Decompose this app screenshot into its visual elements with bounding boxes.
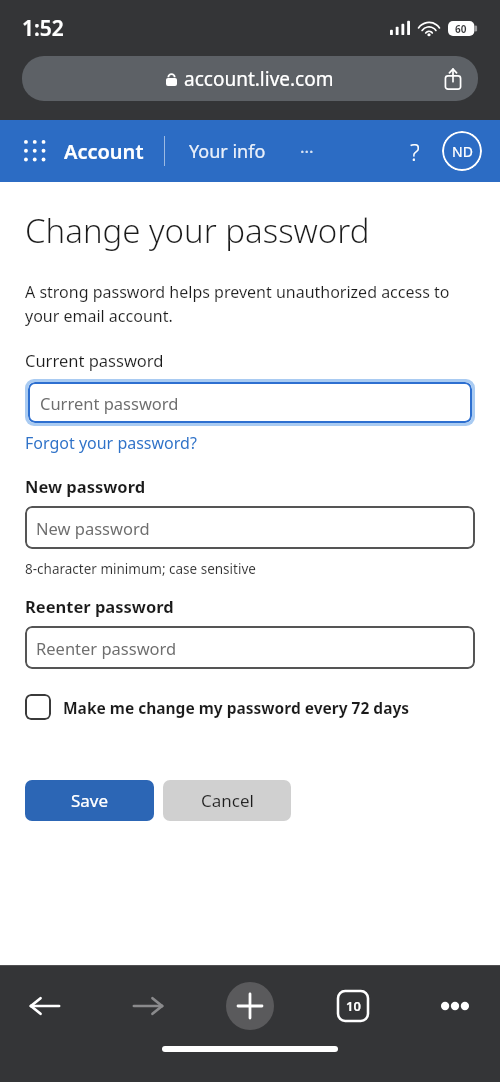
staticText: Save [71, 789, 109, 812]
staticText: Reenter password [25, 595, 174, 617]
staticText: New password [25, 475, 146, 497]
staticText: Account [64, 138, 144, 165]
button[interactable]: Account [60, 132, 148, 171]
button[interactable]: Save [25, 780, 154, 821]
button[interactable]: Your info [185, 133, 270, 170]
button[interactable]: Forgot your password? [25, 432, 197, 454]
staticText: ··· [300, 140, 314, 163]
button[interactable]: Tabs: 10 [322, 975, 384, 1037]
button[interactable]: Account ND [442, 131, 482, 171]
button[interactable]: Make me change my password every 72 days [25, 694, 475, 720]
staticText: New password [36, 517, 150, 539]
staticText: ? [410, 136, 420, 167]
button[interactable]: Forward [117, 975, 179, 1037]
staticText: Cancel [201, 789, 254, 812]
button[interactable]: Share [440, 66, 466, 92]
staticText: 60 [455, 22, 467, 36]
button[interactable]: More options [424, 975, 486, 1037]
staticText: 8-character minimum; case sensitive [25, 560, 256, 578]
staticText: Change your password [25, 208, 370, 253]
button[interactable]: account.live.com [22, 56, 478, 101]
button[interactable]: Back [14, 975, 76, 1037]
button[interactable]: More menus [292, 136, 322, 166]
staticText: A strong password helps prevent unauthor… [25, 281, 475, 327]
staticText: 1:52 [22, 14, 64, 43]
button[interactable]: Help [398, 134, 432, 168]
staticText: ND [452, 142, 473, 161]
button[interactable]: New tab [219, 975, 281, 1037]
button[interactable]: App launcher [18, 134, 52, 168]
staticText: account.live.com [184, 66, 334, 92]
button[interactable]: Current password [28, 382, 472, 423]
staticText: Make me change my password every 72 days [63, 697, 410, 718]
button[interactable]: Reenter password [25, 626, 475, 669]
button[interactable]: New password [25, 506, 475, 549]
button[interactable]: Cancel [163, 780, 291, 821]
staticText: Forgot your password? [25, 432, 197, 454]
staticText: Current password [40, 392, 179, 414]
staticText: Your info [189, 139, 266, 164]
staticText: Reenter password [36, 637, 177, 659]
staticText: Current password [25, 349, 164, 371]
staticText: 10 [346, 997, 361, 1015]
